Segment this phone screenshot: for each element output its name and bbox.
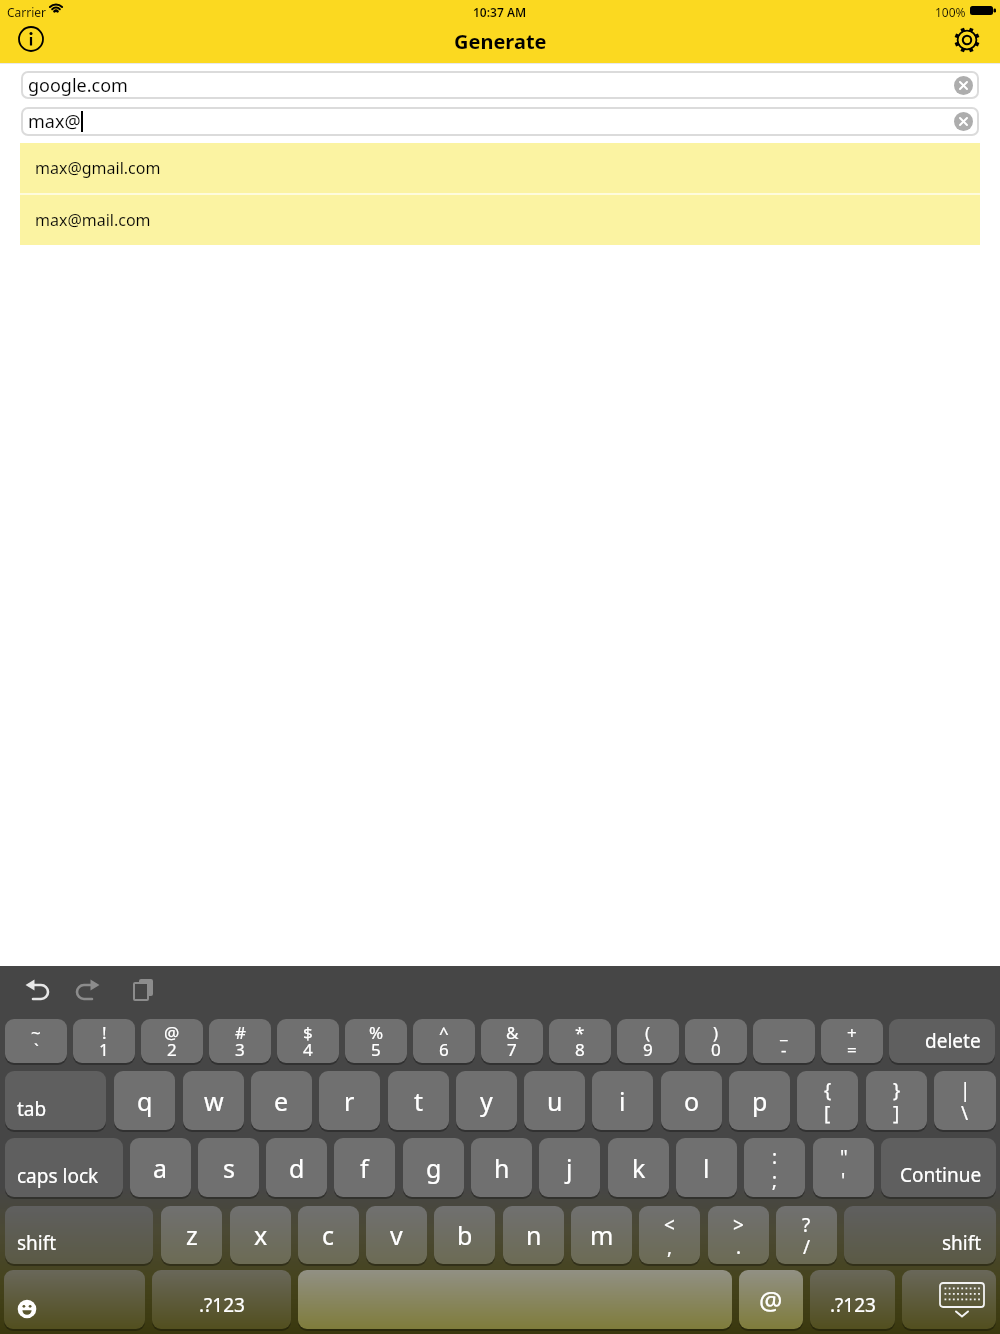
button[interactable]: k (608, 1138, 669, 1197)
button[interactable]: ^ (413, 1019, 475, 1063)
button[interactable]: ! (73, 1019, 135, 1063)
button[interactable]: l (676, 1138, 737, 1197)
button[interactable]: i (592, 1071, 653, 1130)
staticText: k (632, 1151, 646, 1185)
button[interactable]: & (481, 1019, 543, 1063)
button[interactable] (954, 112, 973, 131)
button[interactable]: tab (5, 1071, 106, 1130)
button[interactable]: y (456, 1071, 517, 1130)
staticText: s (223, 1151, 235, 1185)
staticText: q (137, 1084, 153, 1118)
staticText: ] (893, 1100, 900, 1126)
button[interactable]: shift (5, 1206, 153, 1264)
staticText: ) (713, 1021, 719, 1044)
button[interactable]: # (209, 1019, 271, 1063)
button[interactable]: g (403, 1138, 464, 1197)
button[interactable]: { (797, 1071, 858, 1130)
button[interactable]: n (503, 1206, 564, 1264)
button[interactable]: q (114, 1071, 175, 1130)
button[interactable]: .?123 (152, 1270, 291, 1329)
staticText: @ (164, 1021, 180, 1044)
staticText: * (575, 1021, 585, 1044)
staticText: max@gmail.com (35, 157, 161, 179)
button[interactable]: w (183, 1071, 244, 1130)
button[interactable]: ( (617, 1019, 679, 1063)
staticText: + (847, 1021, 857, 1044)
button[interactable]: s (198, 1138, 259, 1197)
staticText: g (426, 1151, 442, 1185)
staticText: r (344, 1084, 355, 1118)
button[interactable]: shift (844, 1206, 996, 1264)
staticText: e (274, 1084, 289, 1118)
button[interactable]: @ (141, 1019, 203, 1063)
button[interactable]: | (934, 1071, 996, 1130)
staticText: max@ (28, 109, 81, 134)
button[interactable]: o (661, 1071, 722, 1130)
button[interactable] (4, 1270, 145, 1329)
staticText: < (664, 1212, 675, 1238)
button[interactable]: > (708, 1206, 769, 1264)
button[interactable]: t (388, 1071, 449, 1130)
staticText: 6 (439, 1038, 449, 1061)
staticText: y (480, 1084, 493, 1118)
button[interactable]: ~ (5, 1019, 67, 1063)
button[interactable]: delete (889, 1019, 995, 1063)
staticText: p (752, 1084, 768, 1118)
button[interactable]: caps lock (5, 1138, 123, 1197)
button[interactable]: } (866, 1071, 927, 1130)
staticText: l (703, 1151, 710, 1185)
button[interactable] (952, 25, 982, 55)
button[interactable]: m (571, 1206, 632, 1264)
button[interactable]: u (524, 1071, 585, 1130)
button[interactable]: Continue (881, 1138, 996, 1197)
button[interactable]: _ (753, 1019, 815, 1063)
staticText: ; (772, 1167, 778, 1193)
button[interactable]: max@mail.com (20, 195, 980, 245)
button[interactable]: max@ (21, 107, 979, 136)
button[interactable]: ? (776, 1206, 837, 1264)
button[interactable]: z (161, 1206, 222, 1264)
button[interactable]: b (434, 1206, 495, 1264)
staticText: 10:37 AM (473, 4, 527, 20)
button[interactable]: " (813, 1138, 874, 1197)
button[interactable]: x (230, 1206, 291, 1264)
button[interactable]: % (345, 1019, 407, 1063)
button[interactable]: f (334, 1138, 395, 1197)
button[interactable] (954, 76, 973, 95)
button[interactable]: v (366, 1206, 427, 1264)
button[interactable] (17, 25, 45, 53)
staticText: c (322, 1218, 335, 1252)
button[interactable]: h (471, 1138, 532, 1197)
button[interactable]: ) (685, 1019, 747, 1063)
button[interactable]: google.com (21, 71, 979, 99)
button[interactable]: .?123 (810, 1270, 895, 1329)
staticText: n (526, 1218, 542, 1252)
button[interactable]: e (251, 1071, 312, 1130)
staticText: $ (303, 1021, 313, 1044)
button[interactable]: j (539, 1138, 600, 1197)
button[interactable]: + (821, 1019, 883, 1063)
button[interactable]: < (639, 1206, 700, 1264)
button[interactable]: d (266, 1138, 327, 1197)
staticText: , (667, 1234, 673, 1260)
button[interactable] (902, 1270, 996, 1329)
button[interactable]: c (298, 1206, 359, 1264)
staticText: google.com (28, 73, 128, 98)
staticText: 0 (711, 1038, 721, 1061)
button[interactable]: max@gmail.com (20, 143, 980, 193)
button[interactable]: a (130, 1138, 191, 1197)
button[interactable] (298, 1270, 732, 1329)
staticText: Generate (454, 28, 547, 55)
staticText: z (186, 1218, 198, 1252)
button[interactable]: $ (277, 1019, 339, 1063)
staticText: - (781, 1038, 787, 1061)
staticText: shift (942, 1230, 982, 1256)
button[interactable]: @ (739, 1270, 803, 1329)
staticText: u (547, 1084, 563, 1118)
button[interactable]: p (729, 1071, 790, 1130)
staticText: 2 (167, 1038, 177, 1061)
staticText: ` (34, 1038, 39, 1061)
button[interactable]: * (549, 1019, 611, 1063)
button[interactable]: r (319, 1071, 380, 1130)
button[interactable]: : (744, 1138, 805, 1197)
